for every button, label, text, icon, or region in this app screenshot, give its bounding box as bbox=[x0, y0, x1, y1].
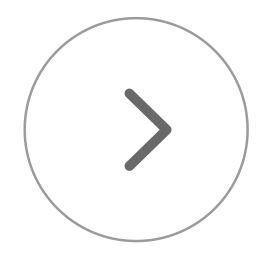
button[interactable]: Next bbox=[23, 17, 249, 242]
